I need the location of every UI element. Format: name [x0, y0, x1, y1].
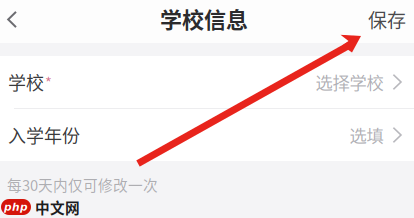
button[interactable]: 保存: [0, 0, 414, 38]
staticText: 保存: [368, 6, 406, 33]
staticText: 学校: [8, 69, 44, 95]
staticText: 学校信息: [160, 3, 248, 34]
button[interactable]: Back: [0, 0, 33, 38]
staticText: 每30天内仅可修改一次: [7, 174, 158, 195]
staticText: 选填: [349, 122, 383, 148]
staticText: 入学年份: [8, 122, 80, 148]
staticText: php: [4, 201, 28, 213]
button[interactable]: 学校: [0, 56, 414, 108]
staticText: 选择学校: [315, 69, 383, 95]
staticText: 中文网: [35, 196, 80, 218]
staticText: *: [45, 71, 52, 93]
button[interactable]: 入学年份: [0, 109, 414, 161]
